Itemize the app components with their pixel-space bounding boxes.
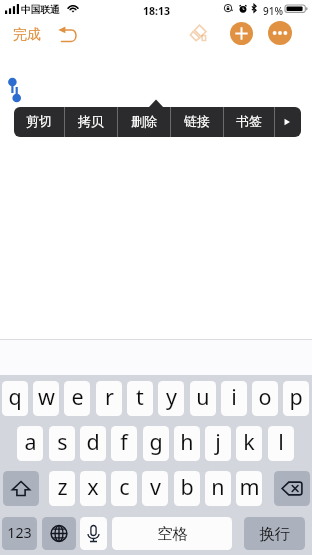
button[interactable]: Change keyboard xyxy=(42,517,76,550)
button[interactable]: n xyxy=(205,471,231,506)
staticText: 91% xyxy=(263,4,283,18)
button[interactable]: y xyxy=(158,381,184,416)
staticText: 剪切 xyxy=(26,113,52,129)
button[interactable]: f xyxy=(111,426,137,461)
staticText: w xyxy=(38,382,55,411)
staticText: j xyxy=(215,427,221,456)
button[interactable]: z xyxy=(49,471,75,506)
staticText: e xyxy=(71,382,84,411)
button[interactable]: More xyxy=(275,107,299,137)
staticText: n xyxy=(211,472,225,501)
staticText: 完成 xyxy=(13,26,41,44)
staticText: u xyxy=(196,382,210,411)
button[interactable]: q xyxy=(2,381,28,416)
button[interactable]: i xyxy=(221,381,247,416)
button[interactable]: s xyxy=(49,426,75,461)
staticText: x xyxy=(87,472,99,501)
button[interactable]: a xyxy=(17,426,43,461)
button[interactable]: 空格 xyxy=(112,517,232,550)
staticText: 换行 xyxy=(259,524,290,543)
button[interactable]: o xyxy=(252,381,278,416)
staticText: 删除 xyxy=(131,113,157,129)
button[interactable]: 换行 xyxy=(244,517,305,550)
button[interactable]: 123 xyxy=(2,517,37,550)
staticText: p xyxy=(289,382,303,411)
button[interactable]: 拷贝 xyxy=(65,107,117,137)
staticText: v xyxy=(150,472,161,501)
staticText: z xyxy=(57,472,68,501)
staticText: t xyxy=(136,382,144,411)
button[interactable]: j xyxy=(205,426,231,461)
staticText: o xyxy=(258,382,272,411)
button[interactable]: u xyxy=(190,381,216,416)
button[interactable]: m xyxy=(236,471,262,506)
button[interactable]: 删除 xyxy=(118,107,170,137)
staticText: 中国联通 xyxy=(21,4,60,16)
staticText: g xyxy=(149,427,163,456)
button[interactable]: x xyxy=(80,471,106,506)
staticText: 链接 xyxy=(184,113,210,129)
staticText: 123 xyxy=(7,523,32,542)
button[interactable]: Shift xyxy=(3,471,39,506)
button[interactable]: More options xyxy=(268,21,292,45)
button[interactable]: w xyxy=(33,381,59,416)
button[interactable]: e xyxy=(64,381,90,416)
button[interactable]: Add xyxy=(230,22,253,45)
staticText: b xyxy=(180,472,194,501)
staticText: q xyxy=(8,382,22,411)
button[interactable]: 书签 xyxy=(224,107,274,137)
button[interactable]: h xyxy=(174,426,200,461)
staticText: h xyxy=(180,427,194,456)
button[interactable]: b xyxy=(174,471,200,506)
staticText: 空格 xyxy=(157,524,188,544)
staticText: 18:13 xyxy=(143,4,170,18)
button[interactable]: 剪切 xyxy=(14,107,64,137)
button[interactable]: Backspace xyxy=(274,471,310,506)
staticText: 拷贝 xyxy=(78,113,104,129)
button[interactable]: k xyxy=(236,426,262,461)
staticText: k xyxy=(243,427,255,456)
button[interactable]: Undo xyxy=(57,25,79,44)
button[interactable]: p xyxy=(283,381,309,416)
button[interactable]: v xyxy=(142,471,168,506)
button[interactable]: r xyxy=(96,381,122,416)
staticText: s xyxy=(57,427,68,456)
button[interactable]: l xyxy=(268,426,294,461)
button[interactable]: Highlighter xyxy=(189,24,208,42)
button[interactable]: t xyxy=(127,381,153,416)
staticText: 书签 xyxy=(236,113,262,129)
staticText: d xyxy=(86,427,100,456)
button[interactable]: 完成 xyxy=(10,24,44,46)
staticText: l xyxy=(278,427,284,456)
button[interactable]: g xyxy=(143,426,169,461)
staticText: y xyxy=(166,382,177,411)
button[interactable]: Dictate xyxy=(80,517,107,550)
staticText: c xyxy=(119,472,130,501)
staticText: a xyxy=(24,427,37,456)
button[interactable]: 链接 xyxy=(171,107,223,137)
staticText: f xyxy=(120,427,128,456)
staticText: i xyxy=(231,382,237,411)
staticText: r xyxy=(105,382,114,411)
staticText: m xyxy=(239,472,260,501)
button[interactable]: d xyxy=(80,426,106,461)
button[interactable]: c xyxy=(111,471,137,506)
